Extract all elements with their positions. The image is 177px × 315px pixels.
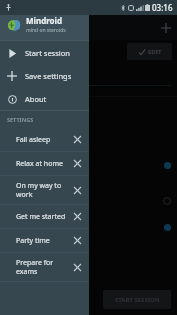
staticText: Prepare for exams xyxy=(16,258,71,276)
staticText: mind on steroids xyxy=(26,27,66,34)
button[interactable]: Relax at home xyxy=(0,152,89,175)
button[interactable]: EDIT xyxy=(127,43,172,60)
button[interactable]: Fall asleep xyxy=(0,128,89,151)
staticText: 03:16 xyxy=(152,2,173,13)
button[interactable]: Party time xyxy=(0,229,89,252)
staticText: SETTINGS xyxy=(7,116,34,123)
button[interactable]: Turn off after session xyxy=(0,217,177,237)
button[interactable]: Delete Fall asleep xyxy=(71,133,84,146)
button[interactable]: START SESSION xyxy=(103,290,171,309)
staticText: Get me started xyxy=(16,212,71,222)
button[interactable]: About xyxy=(0,87,89,110)
staticText: Start session xyxy=(25,48,70,58)
button[interactable]: Prepare for exams xyxy=(0,253,89,281)
staticText: Mindroid xyxy=(26,15,63,26)
button[interactable]: Delete On my way to work xyxy=(71,184,84,197)
button[interactable]: Delete Party time xyxy=(71,234,84,247)
button[interactable]: Vibrate xyxy=(0,191,177,211)
staticText: About xyxy=(25,94,47,104)
button[interactable]: Save settings xyxy=(0,64,89,87)
staticText: Keep screen awake xyxy=(6,160,69,170)
staticText: On my way to work xyxy=(16,181,71,199)
button[interactable]: Delete Get me started xyxy=(71,210,84,223)
button[interactable]: Start session xyxy=(0,41,89,64)
button[interactable]: Delete Relax at home xyxy=(71,157,84,170)
staticText: Save settings xyxy=(25,71,72,81)
staticText: EDIT xyxy=(148,48,162,56)
button[interactable]: Get me started xyxy=(0,205,89,228)
staticText: Vibrate xyxy=(6,196,30,206)
staticText: Turn off after session xyxy=(6,222,76,232)
staticText: Party time xyxy=(16,236,71,246)
button[interactable]: Keep screen awake xyxy=(0,155,177,175)
staticText: Relax at home xyxy=(16,159,71,169)
button[interactable]: On my way to work xyxy=(0,176,89,204)
staticText: Fall asleep xyxy=(16,135,71,145)
staticText: START SESSION xyxy=(115,296,160,304)
button[interactable]: Add preset xyxy=(158,20,174,36)
button[interactable]: Delete Prepare for exams xyxy=(71,261,84,274)
